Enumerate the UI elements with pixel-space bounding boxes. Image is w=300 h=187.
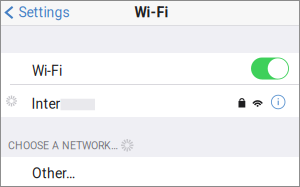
staticText: Settings <box>18 4 69 21</box>
staticText: Other… <box>32 165 75 182</box>
staticText: CHOOSE A NETWORK… <box>8 140 118 152</box>
button[interactable]: Wi-Fi <box>0 53 300 84</box>
button[interactable]: Other… <box>0 157 300 187</box>
staticText: Inter <box>31 96 60 112</box>
button[interactable]: Inter <box>0 85 300 117</box>
button[interactable]: Settings <box>0 0 77 25</box>
staticText: Wi-Fi <box>134 4 168 21</box>
staticText: Wi-Fi <box>32 63 62 79</box>
